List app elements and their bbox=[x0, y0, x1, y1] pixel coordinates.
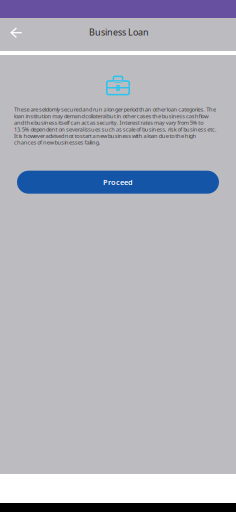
button[interactable]: Proceed bbox=[17, 171, 219, 194]
staticText: These are seldomly secured and run a lon… bbox=[14, 106, 217, 146]
staticText: Business Loan bbox=[89, 26, 149, 38]
staticText: Proceed bbox=[103, 177, 133, 187]
button[interactable]: Back bbox=[5, 22, 27, 44]
